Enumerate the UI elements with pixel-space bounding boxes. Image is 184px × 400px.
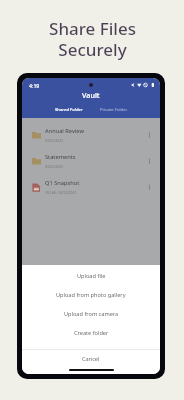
staticText: Cancel <box>82 355 100 363</box>
staticText: 03/22/2023 <box>45 164 64 169</box>
button[interactable]: Private Folder <box>91 105 136 114</box>
other: More options <box>147 157 152 165</box>
button[interactable]: Upload from photo gallery <box>22 286 160 304</box>
staticText: Statements <box>45 153 76 161</box>
other: More options <box>147 183 152 191</box>
staticText: Upload file <box>77 272 106 280</box>
staticText: Private Folder <box>100 107 128 113</box>
staticText: Upload from camera <box>64 310 119 318</box>
staticText: Shared Folder <box>55 107 83 113</box>
staticText: Share Files Securely <box>49 17 136 61</box>
other: More options <box>147 131 152 139</box>
button[interactable]: Upload file <box>22 265 160 286</box>
staticText: Vault <box>82 90 100 100</box>
staticText: Annual Review <box>45 127 84 135</box>
button[interactable]: Annual Review <box>22 122 160 148</box>
button[interactable]: Statements <box>22 148 160 174</box>
button[interactable]: Q1 Snapshot <box>22 174 160 200</box>
button[interactable]: Shared Folder <box>46 105 91 114</box>
staticText: Q1 Snapshot <box>45 179 80 187</box>
staticText: Create folder <box>74 329 109 337</box>
other: Status icons <box>131 83 154 87</box>
button[interactable]: Cancel <box>22 350 160 368</box>
staticText: 03/22/2023 <box>45 138 64 143</box>
button[interactable]: Create folder <box>22 324 160 342</box>
staticText: 352 kB · 03/22/2023 <box>45 190 77 195</box>
staticText: 4:19 <box>29 82 40 89</box>
staticText: Upload from photo gallery <box>56 291 126 299</box>
button[interactable]: Upload from camera <box>22 304 160 324</box>
